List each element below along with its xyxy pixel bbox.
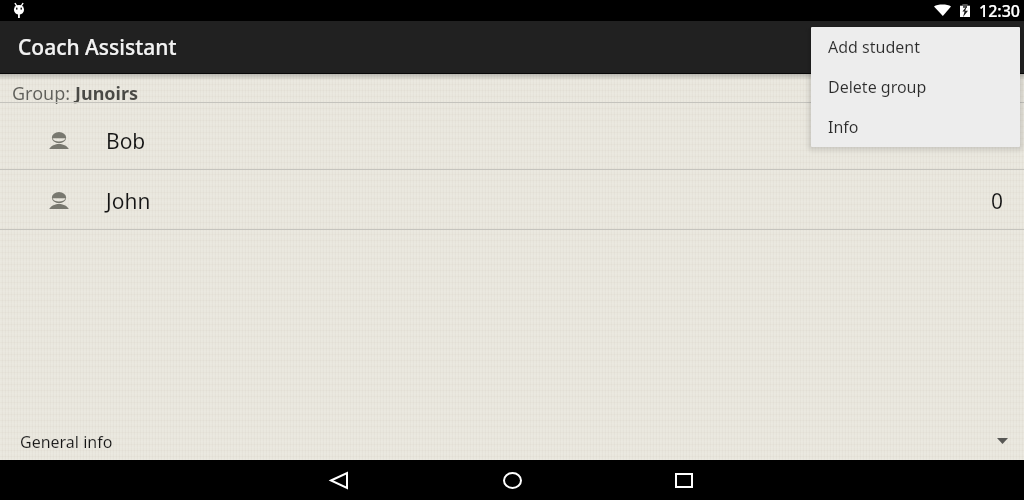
staticText: General info — [20, 431, 113, 453]
button[interactable]: John — [0, 170, 1024, 229]
button[interactable]: Back — [318, 460, 360, 500]
button[interactable]: Add student — [811, 27, 1020, 67]
button[interactable]: Recents — [663, 460, 705, 500]
staticText: 0 — [991, 187, 1004, 216]
staticText: Delete group — [828, 76, 927, 98]
staticText: Junoirs — [75, 81, 139, 106]
staticText: Bob — [106, 127, 146, 156]
button[interactable]: General info — [0, 420, 1024, 460]
staticText: 12:30 — [979, 0, 1020, 21]
staticText: Info — [828, 116, 859, 138]
button[interactable]: Home — [491, 460, 533, 500]
button[interactable]: Info — [811, 107, 1020, 147]
staticText: Group: — [12, 81, 75, 106]
staticText: Add student — [828, 36, 920, 58]
staticText: Coach Assistant — [18, 33, 177, 62]
button[interactable]: Delete group — [811, 67, 1020, 107]
staticText: John — [106, 187, 151, 216]
button[interactable]: Bob — [0, 110, 1024, 169]
